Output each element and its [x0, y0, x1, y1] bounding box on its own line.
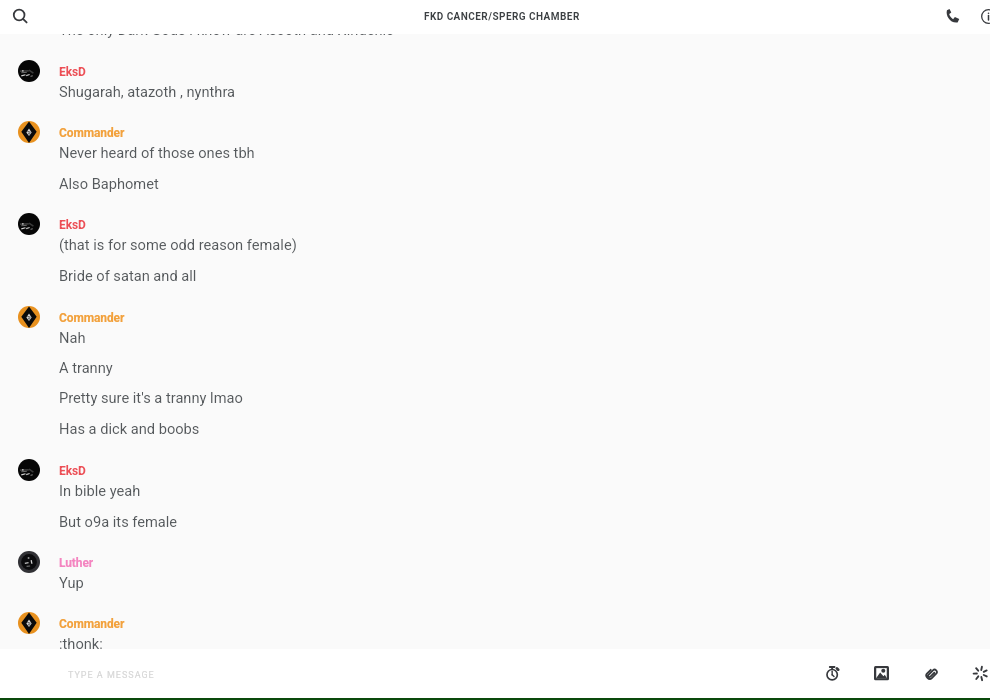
button[interactable]: Shugarah, atazoth , nynthra [0, 77, 990, 105]
staticText: Never heard of those ones tbh [59, 144, 255, 161]
staticText: Shugarah, atazoth , nynthra [59, 83, 236, 100]
staticText: FKD CANCER/SPERG CHAMBER [424, 11, 580, 23]
staticText: Nah [59, 329, 86, 346]
button[interactable]: But o9a its female [0, 507, 990, 535]
staticText: Pretty sure it's a tranny lmao [59, 389, 243, 406]
button[interactable]: Commander [0, 304, 990, 330]
button[interactable]: Commander [0, 119, 990, 145]
staticText: Has a dick and boobs [59, 420, 200, 437]
button[interactable]: Bride of satan and all [0, 261, 990, 289]
button[interactable]: Timer [812, 649, 853, 697]
staticText: TYPE A MESSAGE [68, 670, 155, 681]
staticText: EksD [59, 464, 86, 478]
button[interactable]: Pretty sure it's a tranny lmao [0, 383, 990, 411]
staticText: But o9a its female [59, 513, 178, 530]
button[interactable]: Luther [0, 549, 990, 575]
button[interactable]: Has a dick and boobs [0, 414, 990, 442]
staticText: Also Baphomet [59, 175, 159, 192]
button[interactable]: Image [862, 649, 901, 697]
staticText: EksD [59, 65, 86, 79]
button[interactable]: EksD [0, 457, 990, 483]
button[interactable]: Nah [0, 323, 990, 351]
staticText: Commander [59, 617, 125, 631]
staticText: Commander [59, 311, 125, 325]
button[interactable]: Effects [961, 649, 990, 697]
staticText: A tranny [59, 359, 113, 376]
button[interactable]: The only Dark Gods I know are Asooth and… [0, 15, 990, 43]
button[interactable]: Attach file [912, 649, 951, 697]
button[interactable]: Info [981, 0, 990, 33]
button[interactable]: Never heard of those ones tbh [0, 138, 990, 166]
button[interactable]: :thonk: [0, 629, 990, 657]
button[interactable]: FKD CANCER/SPERG CHAMBER [424, 0, 580, 33]
staticText: Bride of satan and all [59, 267, 197, 284]
staticText: EksD [59, 218, 86, 232]
staticText: Luther [59, 556, 94, 570]
staticText: Commander [59, 126, 125, 140]
staticText: The only Dark Gods I know are Asooth and… [59, 21, 394, 38]
button[interactable]: EksD [0, 211, 990, 237]
staticText: In bible yeah [59, 482, 141, 499]
button[interactable]: (that is for some odd reason female) [0, 230, 990, 258]
button[interactable]: Commander [0, 610, 990, 636]
button[interactable]: EksD [0, 58, 990, 84]
button[interactable]: Search [4, 0, 37, 33]
button[interactable]: Call [945, 0, 975, 33]
staticText: :thonk: [59, 635, 103, 652]
button[interactable]: Yup [0, 568, 990, 596]
button[interactable]: Also Baphomet [0, 169, 990, 197]
button[interactable]: In bible yeah [0, 476, 990, 504]
staticText: Yup [59, 574, 84, 591]
staticText: (that is for some odd reason female) [59, 236, 297, 253]
button[interactable]: A tranny [0, 353, 990, 381]
